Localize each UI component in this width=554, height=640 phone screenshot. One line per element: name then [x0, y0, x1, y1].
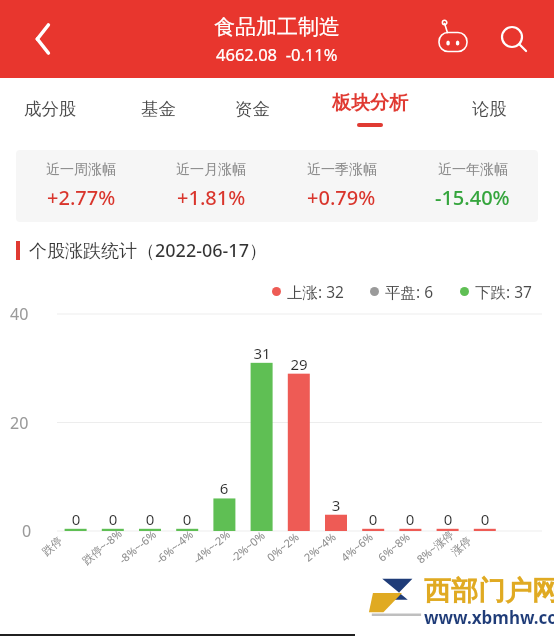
staticText: 4662.08 -0.11% [216, 43, 338, 65]
button[interactable]: 板块分析 [316, 78, 424, 140]
button[interactable]: 近一周涨幅 [16, 150, 146, 222]
staticText: +2.77% [47, 184, 116, 211]
staticText: 0 [433, 509, 463, 529]
staticText: 6 [209, 478, 239, 498]
staticText: 跌停 [39, 534, 65, 558]
button[interactable]: 上涨: 32 [272, 281, 344, 302]
staticText: -15.40% [435, 184, 510, 211]
staticText: 上涨: 32 [287, 281, 344, 302]
staticText: 2%~4% [301, 528, 339, 564]
button[interactable]: Assistant robot [430, 16, 476, 62]
button[interactable]: 近一月涨幅 [146, 150, 276, 222]
staticText: 3 [321, 495, 351, 515]
staticText: 近一周涨幅 [46, 161, 116, 179]
staticText: 基金 [141, 98, 176, 120]
staticText: 近一月涨幅 [176, 161, 246, 179]
staticText: 论股 [472, 98, 507, 120]
staticText: 涨停 [448, 534, 474, 558]
staticText: 近一年涨幅 [438, 161, 508, 179]
staticText: +1.81% [177, 184, 246, 211]
button[interactable]: 论股 [449, 78, 529, 140]
button[interactable]: 成分股 [10, 78, 90, 140]
staticText: 0 [22, 520, 32, 542]
staticText: -8%~-6% [115, 526, 159, 567]
staticText: 近一季涨幅 [307, 161, 377, 179]
staticText: 29 [284, 354, 314, 374]
staticText: 0 [470, 509, 500, 529]
button[interactable]: 基金 [118, 78, 198, 140]
staticText: 0%~2% [264, 528, 302, 564]
staticText: +0.79% [307, 184, 376, 211]
button[interactable]: 资金 [212, 78, 292, 140]
staticText: 0 [172, 509, 202, 529]
staticText: -6%~-4% [152, 526, 196, 567]
staticText: 板块分析 [332, 91, 408, 115]
staticText: 0 [135, 509, 165, 529]
staticText: 资金 [235, 98, 270, 120]
staticText: 下跌: 37 [475, 281, 532, 302]
staticText: 食品加工制造 [214, 14, 340, 40]
button[interactable]: Back [18, 16, 64, 62]
button[interactable]: 近一季涨幅 [276, 150, 407, 222]
button[interactable]: Search [490, 16, 536, 62]
staticText: 0 [98, 509, 128, 529]
button[interactable]: 近一年涨幅 [407, 150, 538, 222]
staticText: 个股涨跌统计（2022-06-17） [29, 238, 267, 263]
staticText: 31 [247, 343, 277, 363]
staticText: -4%~-2% [189, 526, 233, 567]
button[interactable]: 下跌: 37 [460, 281, 532, 302]
staticText: 平盘: 6 [385, 281, 434, 302]
staticText: 西部门户网 [424, 574, 554, 608]
staticText: 8%~涨停 [413, 527, 457, 566]
staticText: 0 [395, 509, 425, 529]
staticText: 跌停~-8% [79, 525, 125, 568]
staticText: 40 [10, 303, 29, 325]
staticText: 20 [10, 412, 29, 434]
staticText: 0 [61, 509, 91, 529]
staticText: -2%~0% [227, 528, 268, 565]
staticText: 成分股 [24, 98, 77, 120]
button[interactable]: 平盘: 6 [370, 281, 434, 302]
staticText: 6%~8% [375, 528, 413, 564]
staticText: 4%~6% [338, 528, 376, 564]
staticText: www.xbmhw.com [424, 606, 554, 629]
staticText: 0 [358, 509, 388, 529]
